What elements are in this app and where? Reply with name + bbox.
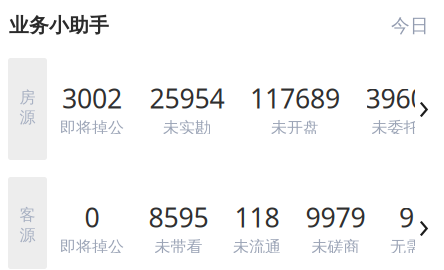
button[interactable]: 房 [8, 58, 436, 160]
staticText: 即将掉公 [60, 118, 124, 138]
button[interactable]: 客 [8, 177, 436, 269]
staticText: 未实勘 [163, 118, 211, 138]
staticText: 118 [234, 199, 279, 235]
staticText: 未委托 [371, 118, 419, 138]
staticText: 源 [19, 107, 35, 128]
staticText: 25954 [149, 80, 224, 116]
staticText: 房 [19, 87, 35, 107]
staticText: 源 [19, 225, 35, 245]
staticText: 未带看 [154, 237, 202, 257]
staticText: 99 [399, 199, 429, 235]
staticText: 未磋商 [311, 237, 359, 257]
staticText: 8595 [148, 199, 208, 235]
staticText: 客 [19, 205, 35, 225]
staticText: 即将掉公 [60, 237, 124, 257]
staticText: 今日 [391, 14, 429, 37]
staticText: 9979 [305, 199, 365, 235]
staticText: 3002 [62, 80, 122, 116]
staticText: 117689 [250, 80, 340, 116]
staticText: 未流通 [233, 237, 281, 257]
staticText: 0 [84, 199, 99, 235]
staticText: 业务小助手 [9, 13, 109, 38]
staticText: 3960 [365, 80, 425, 116]
button[interactable]: 今日 [391, 14, 429, 37]
staticText: 无需求 [390, 237, 438, 257]
staticText: 未开盘 [271, 118, 319, 138]
